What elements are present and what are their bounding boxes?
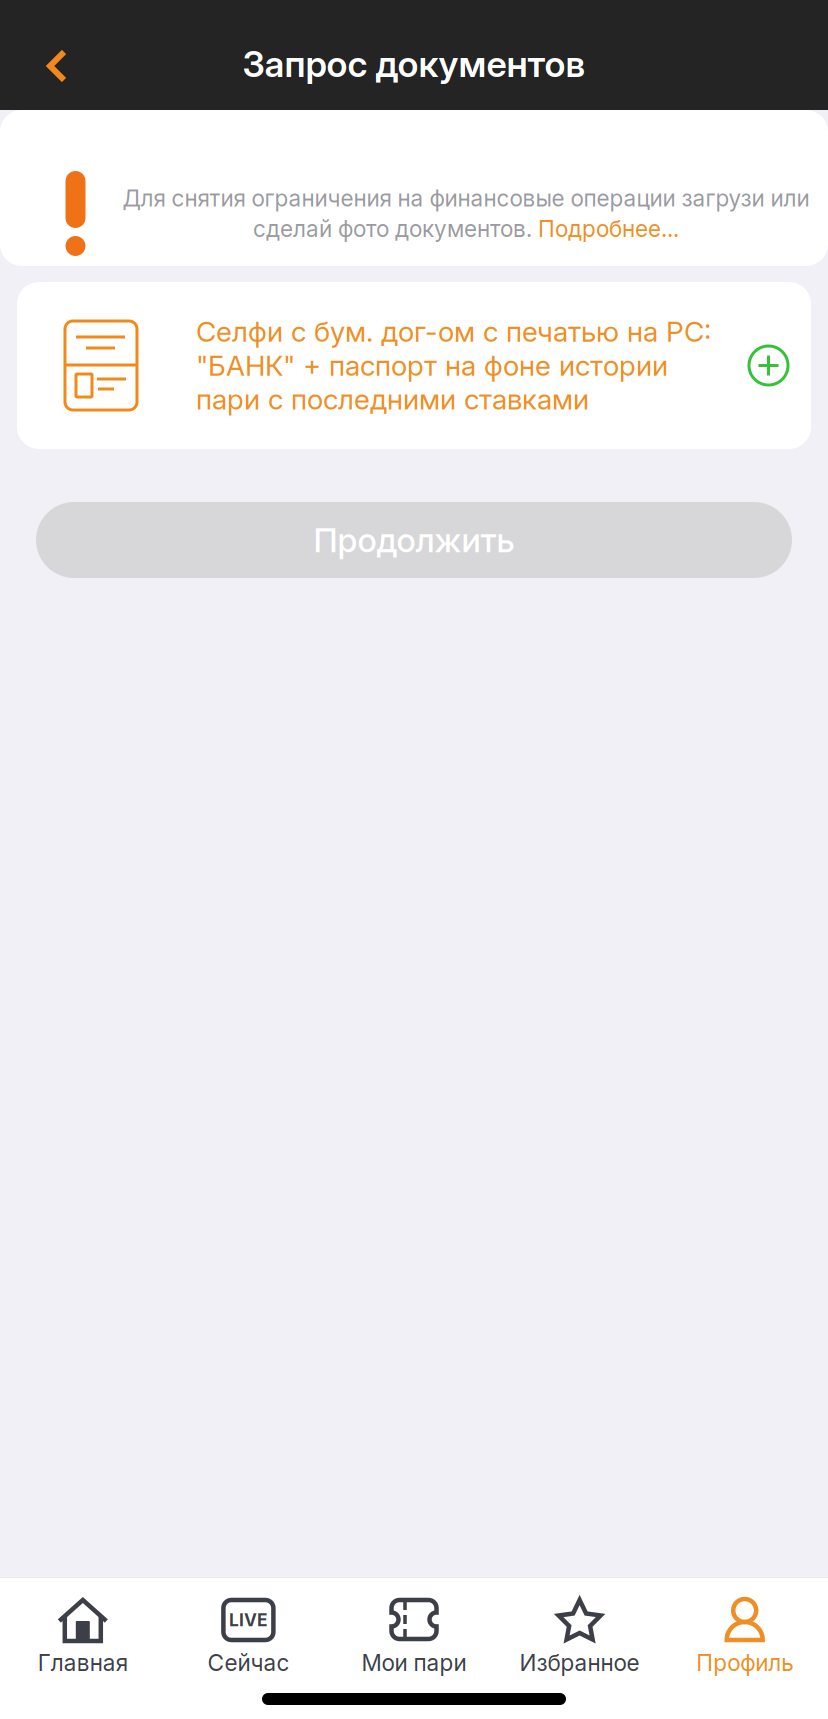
button[interactable]: Продолжить [36, 502, 792, 578]
button[interactable]: Back [0, 0, 102, 98]
button[interactable]: Подробнее... [538, 215, 679, 242]
staticText: Селфи с бум. дог-ом с печатью на РС: "БА… [196, 315, 711, 416]
staticText: Сейчас [207, 1649, 289, 1676]
staticText: Запрос документов [242, 42, 585, 86]
staticText: сделай фото документов. [253, 215, 538, 242]
button[interactable]: Селфи с бум. дог-ом с печатью на РС: "БА… [17, 282, 811, 449]
staticText: Для снятия ограничения на финансовые опе… [122, 185, 809, 212]
staticText: Продолжить [313, 520, 514, 560]
button[interactable]: LIVE [166, 1578, 331, 1676]
staticText: Подробнее... [538, 215, 679, 242]
staticText: Мои пари [361, 1649, 466, 1676]
button[interactable]: Профиль [662, 1578, 828, 1676]
staticText: Главная [38, 1649, 128, 1676]
staticText: LIVE [229, 1609, 268, 1630]
button[interactable]: Избранное [497, 1578, 662, 1676]
button[interactable]: Главная [0, 1578, 166, 1676]
staticText: Избранное [520, 1649, 640, 1676]
button[interactable]: Мои пари [331, 1578, 497, 1676]
staticText: Профиль [696, 1649, 794, 1676]
